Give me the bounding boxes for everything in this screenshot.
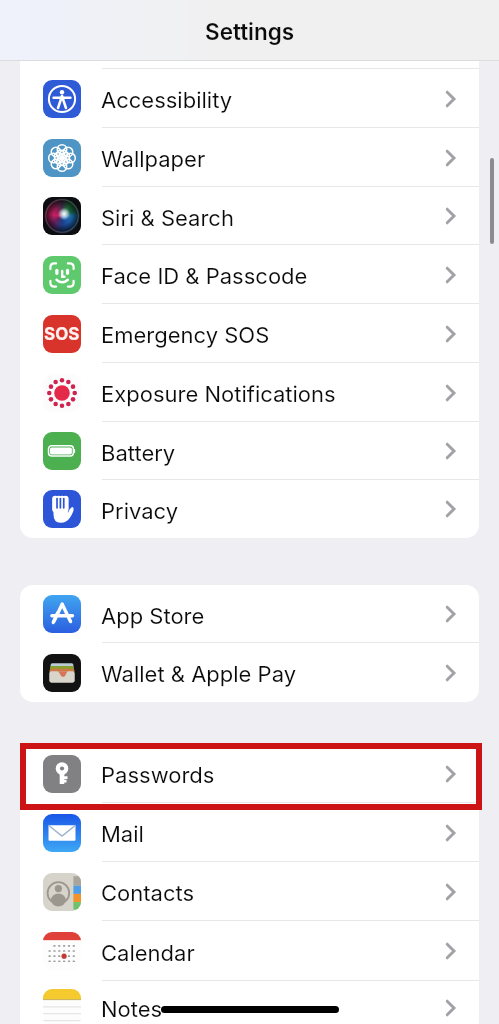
staticText: Accessibility [101,87,233,114]
staticText: Siri & Search [101,205,234,232]
button[interactable]: Passwords [20,744,479,803]
button[interactable]: Siri & Search [20,187,479,245]
staticText: Privacy [101,498,179,525]
button[interactable]: Exposure Notifications [20,363,479,422]
staticText: Exposure Notifications [101,381,336,408]
button[interactable]: Wallet & Apple Pay [20,643,479,702]
staticText: Control Center [101,28,254,55]
staticText: Emergency SOS [101,322,270,349]
staticText: Passwords [101,762,215,789]
button[interactable]: Contacts [20,862,479,921]
button[interactable]: Battery [20,422,479,480]
button[interactable]: App Store [20,585,479,643]
button[interactable]: Notes [20,981,479,1024]
button[interactable]: Calendar [20,921,479,981]
button[interactable]: SOS [20,304,479,363]
staticText: Mail [101,821,144,848]
staticText: Contacts [101,880,195,907]
staticText: Notes [101,996,163,1023]
button[interactable]: Mail [20,803,479,862]
button[interactable]: Wallpaper [20,128,479,187]
button[interactable]: Accessibility [20,69,479,128]
staticText: App Store [101,603,205,630]
staticText: Wallpaper [101,146,206,173]
staticText: Calendar [101,940,195,967]
staticText: SOS [44,324,80,345]
button[interactable]: Face ID & Passcode [20,245,479,304]
staticText: Wallet & Apple Pay [101,661,297,688]
button[interactable]: Control Center [20,10,479,69]
button[interactable]: Privacy [20,480,479,538]
staticText: Face ID & Passcode [101,263,308,290]
staticText: Battery [101,440,176,467]
staticText: Settings [205,18,295,45]
